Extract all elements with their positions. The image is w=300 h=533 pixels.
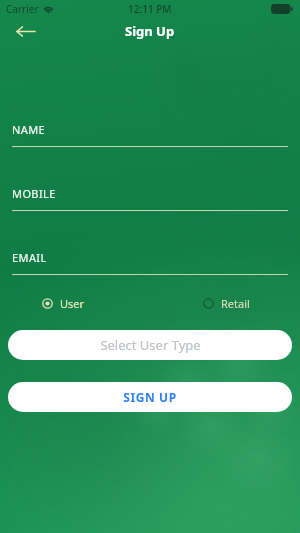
button[interactable]: MOBILE [12,186,288,211]
staticText: 12:11 PM [128,2,172,16]
staticText: SIGN UP [123,389,177,405]
staticText: Carrier [6,2,39,16]
button[interactable]: NAME [12,122,288,147]
staticText: Retail [221,296,250,311]
staticText: EMAIL [12,250,47,265]
button[interactable]: EMAIL [12,250,288,275]
staticText: MOBILE [12,186,56,201]
button[interactable]: SIGN UP [8,382,292,412]
button[interactable]: User [42,294,85,313]
button[interactable]: Back [10,18,40,44]
staticText: User [60,296,85,311]
button[interactable]: Retail [203,294,250,313]
staticText: Sign Up [125,22,175,40]
staticText: NAME [12,122,46,137]
button[interactable]: Select User Type [8,330,292,360]
staticText: Select User Type [100,336,201,354]
